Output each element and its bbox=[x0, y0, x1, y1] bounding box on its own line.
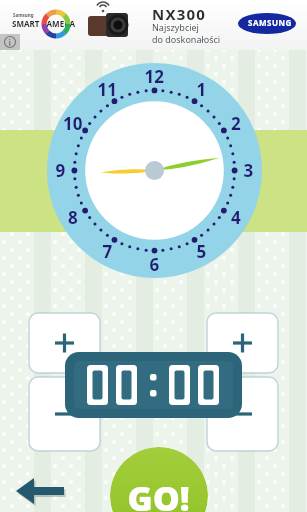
button[interactable]: Decrease seconds bbox=[207, 377, 278, 451]
button[interactable]: Analog clock bbox=[47, 63, 262, 278]
button[interactable]: Back bbox=[14, 474, 68, 508]
button[interactable]: Timer 00:00 bbox=[65, 352, 242, 418]
button[interactable]: Increase minutes bbox=[29, 313, 100, 373]
button[interactable]: Increase seconds bbox=[207, 313, 278, 373]
button[interactable] bbox=[110, 447, 208, 512]
button[interactable]: Samsung NX300 advertisement bbox=[0, 0, 307, 50]
button[interactable]: Decrease minutes bbox=[29, 377, 100, 451]
